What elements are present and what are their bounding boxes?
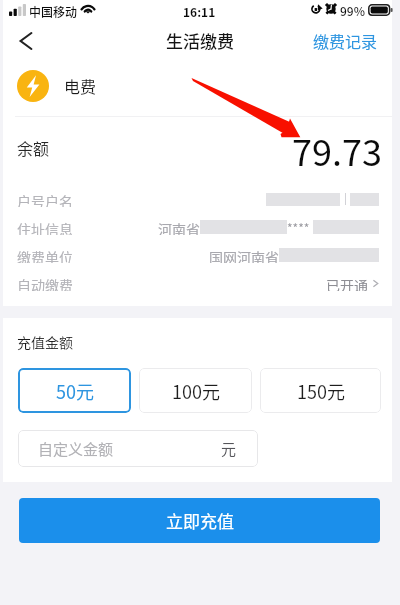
staticText: 生活缴费: [166, 28, 234, 53]
staticText: 缴费单位: [17, 247, 73, 263]
staticText: 150元: [297, 378, 345, 404]
staticText: 79.73: [292, 124, 382, 176]
staticText: 元: [221, 438, 237, 460]
button[interactable]: [310, 24, 400, 57]
staticText: 16:11: [183, 3, 216, 20]
staticText: 立即充值: [166, 508, 234, 533]
staticText: 100元: [172, 378, 220, 404]
button[interactable]: 立即充值: [19, 498, 380, 543]
button[interactable]: 150元: [260, 368, 381, 413]
staticText: 99%: [340, 2, 365, 19]
staticText: 国网河南省: [209, 247, 279, 263]
staticText: 户号户名: [17, 191, 73, 207]
staticText: 河南省: [158, 219, 200, 235]
staticText: 自定义金额: [38, 438, 114, 460]
staticText: 电费: [64, 74, 97, 97]
button[interactable]: 自定义金额: [18, 430, 258, 467]
staticText: 50元: [56, 378, 94, 404]
staticText: 已开通: [326, 275, 368, 291]
staticText: 缴费记录: [313, 29, 378, 52]
staticText: 自动缴费: [17, 275, 73, 291]
staticText: 充值金额: [17, 332, 73, 352]
staticText: 余额: [17, 136, 50, 159]
button[interactable]: 50元: [18, 368, 131, 413]
staticText: 住址信息: [17, 219, 73, 235]
staticText: 中国移动: [29, 3, 78, 20]
button[interactable]: Back: [0, 24, 52, 57]
staticText: ****: [287, 219, 310, 235]
button[interactable]: 100元: [139, 368, 252, 413]
